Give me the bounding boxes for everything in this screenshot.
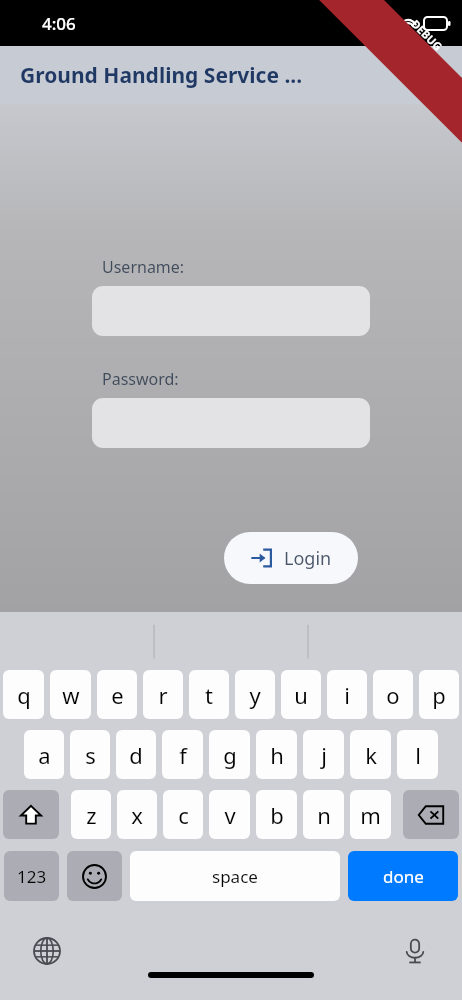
staticText: w [62, 680, 80, 710]
staticText: m [360, 800, 381, 830]
staticText: g [223, 740, 237, 770]
staticText: u [294, 680, 308, 710]
staticText: done [383, 865, 424, 888]
staticText: f [179, 740, 187, 770]
button[interactable]: Backspace [403, 790, 459, 839]
staticText: 4:06 [42, 12, 76, 35]
button[interactable]: b [256, 790, 297, 839]
button[interactable]: l [397, 730, 438, 779]
button[interactable]: 123 [4, 851, 59, 901]
staticText: o [386, 680, 400, 710]
staticText: b [270, 800, 284, 830]
button[interactable]: t [189, 670, 229, 719]
button[interactable]: g [209, 730, 250, 779]
button[interactable]: h [256, 730, 297, 779]
staticText: e [111, 680, 124, 710]
button[interactable]: s [70, 730, 110, 779]
staticText: s [85, 740, 96, 770]
button[interactable]: j [303, 730, 344, 779]
button[interactable]: z [71, 790, 111, 839]
staticText: d [129, 740, 143, 770]
staticText: k [365, 740, 377, 770]
button[interactable]: u [281, 670, 321, 719]
staticText: v [224, 800, 236, 830]
staticText: c [178, 800, 189, 830]
staticText: r [158, 680, 168, 710]
button[interactable]: Change keyboard language [30, 934, 64, 968]
staticText: Login [284, 546, 332, 571]
staticText: j [321, 740, 327, 770]
button[interactable]: w [50, 670, 91, 719]
button[interactable]: a [24, 730, 64, 779]
button[interactable]: Shift [3, 790, 59, 839]
staticText: l [415, 740, 421, 770]
staticText: q [17, 680, 31, 710]
button[interactable]: Voice input [398, 934, 432, 968]
button[interactable]: Emoji [67, 851, 122, 901]
button[interactable]: d [116, 730, 156, 779]
button[interactable]: done [348, 851, 458, 901]
button[interactable] [92, 398, 370, 448]
staticText: 123 [17, 865, 47, 888]
button[interactable]: r [143, 670, 183, 719]
staticText: Username: [102, 256, 185, 278]
button[interactable]: k [350, 730, 391, 779]
button[interactable]: y [235, 670, 275, 719]
staticText: Password: [102, 368, 179, 390]
staticText: p [432, 680, 446, 710]
button[interactable]: i [327, 670, 367, 719]
button[interactable]: v [209, 790, 250, 839]
staticText: Ground Handling Service ... [20, 61, 303, 90]
button[interactable]: x [117, 790, 157, 839]
staticText: h [270, 740, 284, 770]
button[interactable]: p [419, 670, 459, 719]
staticText: n [317, 800, 331, 830]
button[interactable]: f [162, 730, 203, 779]
button[interactable] [92, 286, 370, 336]
staticText: i [344, 680, 350, 710]
staticText: space [212, 865, 258, 888]
button[interactable]: q [3, 670, 44, 719]
staticText: z [86, 800, 97, 830]
staticText: y [249, 680, 261, 710]
button[interactable]: n [303, 790, 344, 839]
button[interactable]: o [373, 670, 413, 719]
button[interactable]: m [350, 790, 391, 839]
staticText: a [38, 740, 51, 770]
button[interactable]: Login [224, 532, 358, 584]
staticText: x [131, 800, 143, 830]
button[interactable]: space [130, 851, 340, 901]
staticText: t [205, 680, 213, 710]
button[interactable]: c [163, 790, 203, 839]
button[interactable]: e [97, 670, 137, 719]
